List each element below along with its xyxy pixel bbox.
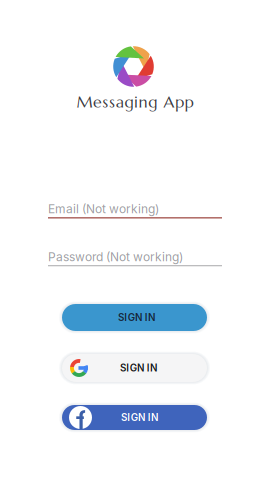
staticText: SIGN IN <box>118 311 155 323</box>
staticText: Messaging App <box>76 92 194 112</box>
button[interactable]: SIGN IN <box>62 304 207 331</box>
staticText: Password (Not working) <box>48 250 183 264</box>
staticText: SIGN IN <box>120 362 157 374</box>
staticText: Email (Not working) <box>48 202 159 216</box>
button[interactable]: SIGN IN <box>62 354 207 382</box>
button[interactable]: SIGN IN <box>62 405 207 430</box>
staticText: SIGN IN <box>121 411 158 423</box>
